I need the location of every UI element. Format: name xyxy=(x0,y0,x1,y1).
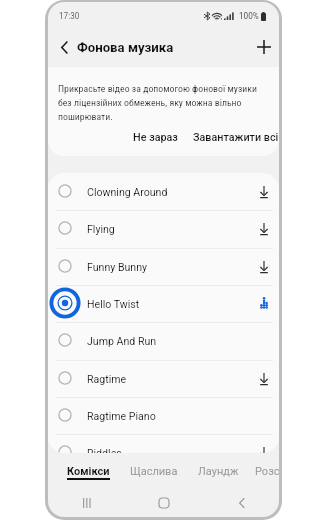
staticText: Не зараз xyxy=(133,131,178,144)
other: Download xyxy=(260,186,268,198)
button[interactable]: Лаундж xyxy=(186,453,251,487)
staticText: Щаслива xyxy=(130,465,178,478)
button[interactable]: Jump And Run xyxy=(48,322,279,359)
button[interactable]: Riddles xyxy=(48,434,279,453)
other: Download xyxy=(260,447,268,453)
button[interactable]: Комікси xyxy=(56,453,121,487)
other: Download xyxy=(260,223,268,235)
button[interactable]: Funny Bunny xyxy=(48,248,279,285)
staticText: Завантажити всі xyxy=(193,131,279,144)
staticText: Розслаблива xyxy=(255,465,279,478)
staticText: Ragtime xyxy=(87,373,127,385)
staticText: Фонова музика xyxy=(77,40,174,55)
button[interactable]: Щаслива xyxy=(121,453,186,487)
other: Playing xyxy=(260,298,268,310)
staticText: Funny Bunny xyxy=(87,261,148,273)
button[interactable]: Flying xyxy=(48,210,279,247)
button[interactable]: Clowning Around xyxy=(48,173,279,210)
staticText: Комікси xyxy=(67,465,110,478)
staticText: 100% xyxy=(239,11,259,21)
button[interactable]: Ragtime Piano xyxy=(48,397,279,434)
staticText: Ragtime Piano xyxy=(87,410,156,422)
button[interactable]: Back xyxy=(228,490,254,516)
staticText: Riddles xyxy=(87,447,122,453)
button[interactable]: Recent apps xyxy=(74,490,100,516)
button[interactable]: Ragtime xyxy=(48,360,279,397)
button[interactable]: Не зараз xyxy=(127,126,184,149)
button[interactable]: Розслаблива xyxy=(256,453,279,487)
staticText: Clowning Around xyxy=(87,186,168,198)
button[interactable]: Add music xyxy=(253,36,275,58)
button[interactable]: Hello Twist xyxy=(48,285,279,322)
staticText: 17:30 xyxy=(59,11,80,21)
staticText: Flying xyxy=(87,223,115,235)
staticText: Прикрасьте відео за допомогою фонової му… xyxy=(58,83,260,122)
button[interactable]: Home xyxy=(151,490,177,516)
other: Download xyxy=(260,261,268,273)
staticText: Hello Twist xyxy=(87,298,140,310)
button[interactable]: Завантажити всі xyxy=(187,126,279,149)
staticText: Jump And Run xyxy=(87,335,157,347)
button[interactable]: Back xyxy=(53,36,75,58)
staticText: Лаундж xyxy=(198,465,239,478)
other: Download xyxy=(260,373,268,385)
